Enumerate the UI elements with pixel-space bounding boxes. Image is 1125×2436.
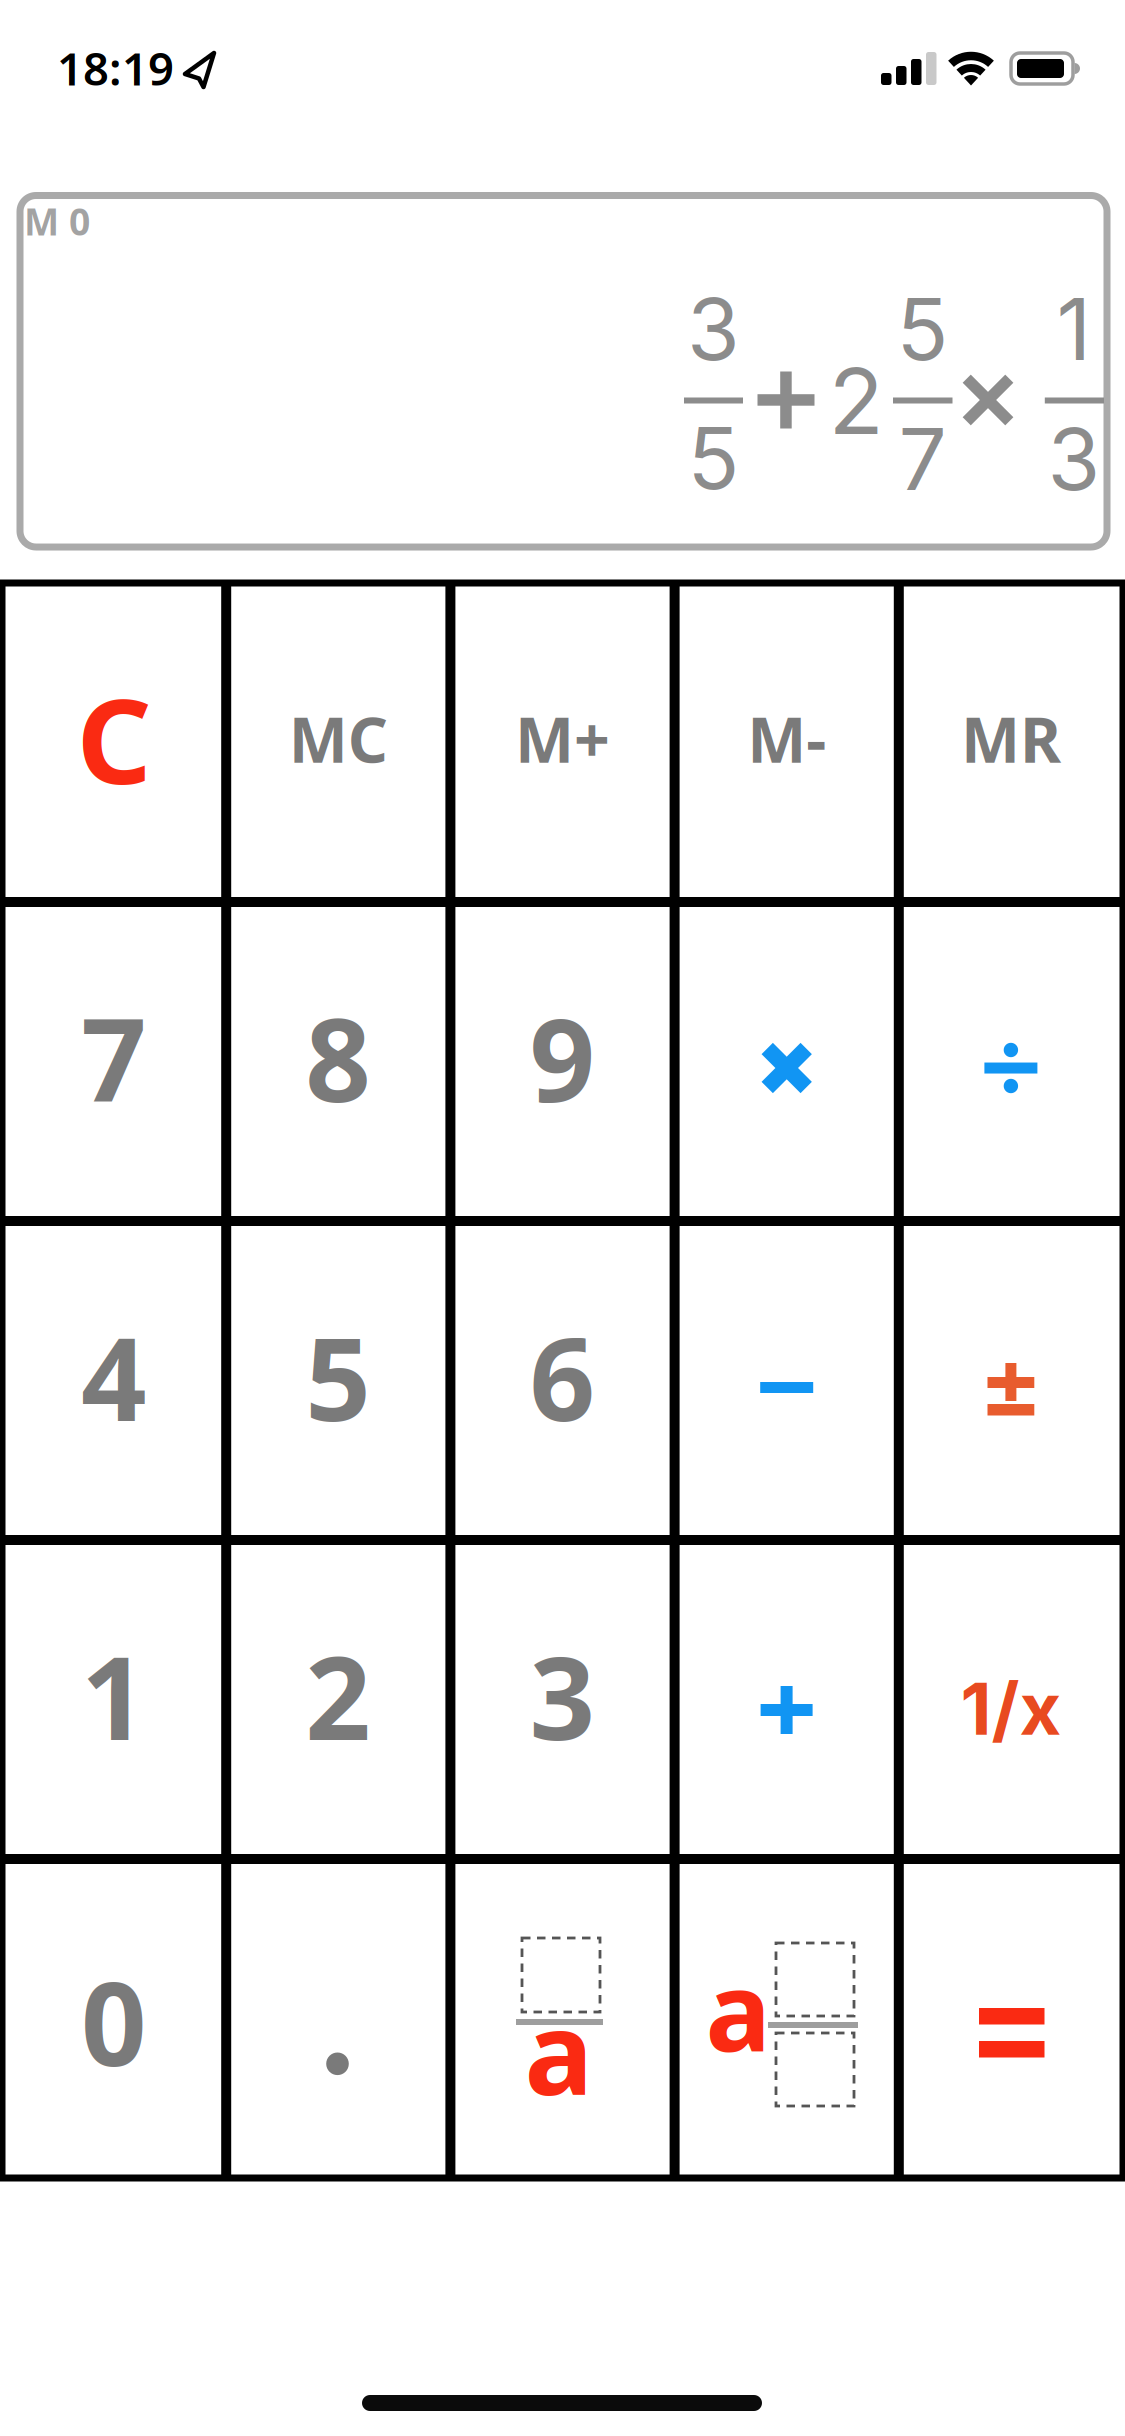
staticText: 2 xyxy=(828,346,883,456)
button[interactable]: equals xyxy=(899,1859,1123,2178)
button[interactable]: 3 xyxy=(450,1540,675,1859)
button[interactable]: fraction xyxy=(450,1859,675,2178)
button[interactable]: 8 xyxy=(226,902,450,1221)
staticText: 9 xyxy=(529,981,595,1134)
staticText: 5 xyxy=(687,406,739,510)
button[interactable]: mixed number xyxy=(675,1859,899,2178)
button[interactable]: 9 xyxy=(450,902,675,1221)
button[interactable]: MC xyxy=(226,583,450,902)
staticText: 5 xyxy=(896,277,948,381)
staticText: M+ xyxy=(515,697,610,780)
staticText: 1 xyxy=(81,1619,147,1772)
button[interactable]: 1 xyxy=(2,1540,226,1859)
button[interactable]: 7 xyxy=(2,902,226,1221)
button[interactable]: C xyxy=(2,583,226,902)
staticText: 18:19 xyxy=(57,38,174,98)
button[interactable]: decimal point xyxy=(226,1859,450,2178)
staticText: 2 xyxy=(305,1619,371,1772)
button[interactable]: 0 xyxy=(2,1859,226,2178)
staticText: 8 xyxy=(305,981,371,1134)
button[interactable]: multiply xyxy=(675,902,899,1221)
button[interactable]: plus xyxy=(675,1540,899,1859)
button[interactable]: 6 xyxy=(450,1221,675,1540)
button[interactable]: plus minus xyxy=(899,1221,1123,1540)
button[interactable]: M- xyxy=(675,583,899,902)
staticText: a xyxy=(524,1974,593,2127)
staticText: M- xyxy=(747,697,826,780)
button[interactable]: 2 xyxy=(226,1540,450,1859)
button[interactable]: divide xyxy=(899,902,1123,1221)
button[interactable]: MR xyxy=(899,583,1123,902)
staticText: 1 xyxy=(1056,277,1091,381)
button[interactable]: 5 xyxy=(226,1221,450,1540)
staticText: MC xyxy=(289,697,388,780)
staticText: a xyxy=(705,1936,770,2082)
button[interactable]: M+ xyxy=(450,583,675,902)
staticText: 6 xyxy=(529,1300,595,1453)
button[interactable]: 4 xyxy=(2,1221,226,1540)
staticText: 7 xyxy=(81,981,147,1134)
staticText: C xyxy=(77,661,152,816)
staticText: 1/x xyxy=(960,1665,1061,1752)
staticText: MR xyxy=(961,697,1061,780)
staticText: 4 xyxy=(81,1300,147,1453)
staticText: 5 xyxy=(305,1300,371,1453)
button[interactable]: 1/x xyxy=(899,1540,1123,1859)
button[interactable]: minus xyxy=(675,1221,899,1540)
staticText: 3 xyxy=(1047,407,1100,511)
staticText: 3 xyxy=(529,1619,595,1772)
staticText: 0 xyxy=(81,1945,147,2098)
staticText: 7 xyxy=(898,407,946,511)
staticText: M 0 xyxy=(24,196,90,246)
staticText: 3 xyxy=(687,277,740,381)
